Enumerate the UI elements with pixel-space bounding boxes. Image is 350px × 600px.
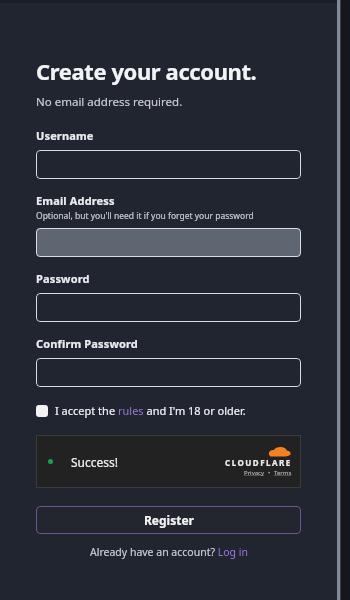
staticText: Optional, but you'll need it if you forg…: [36, 210, 254, 222]
staticText: Password: [36, 271, 90, 286]
button[interactable]: Already have an account? Log in: [90, 545, 248, 559]
button[interactable]: Username: [36, 150, 301, 179]
button[interactable]: Register: [36, 506, 301, 534]
button[interactable]: Email Address: [36, 228, 301, 257]
staticText: Create your account.: [36, 56, 257, 86]
staticText: I accept the rules and I'm 18 or older.: [55, 403, 246, 418]
staticText: No email address required.: [36, 94, 183, 110]
staticText: Email Address: [36, 193, 115, 208]
staticText: Privacy: [244, 469, 265, 477]
staticText: Terms: [274, 469, 292, 477]
button[interactable]: I accept the rules and I'm 18 or older.: [36, 403, 246, 418]
staticText: Success!: [71, 454, 119, 470]
staticText: Username: [36, 128, 94, 143]
button[interactable]: Cloudflare verification success: [36, 435, 301, 488]
staticText: Register: [144, 512, 194, 528]
staticText: Confirm Password: [36, 336, 138, 351]
staticText: •: [265, 469, 274, 477]
staticText: CLOUDFLARE: [225, 457, 292, 468]
button[interactable]: Password: [36, 293, 301, 322]
button[interactable]: Confirm Password: [36, 358, 301, 387]
